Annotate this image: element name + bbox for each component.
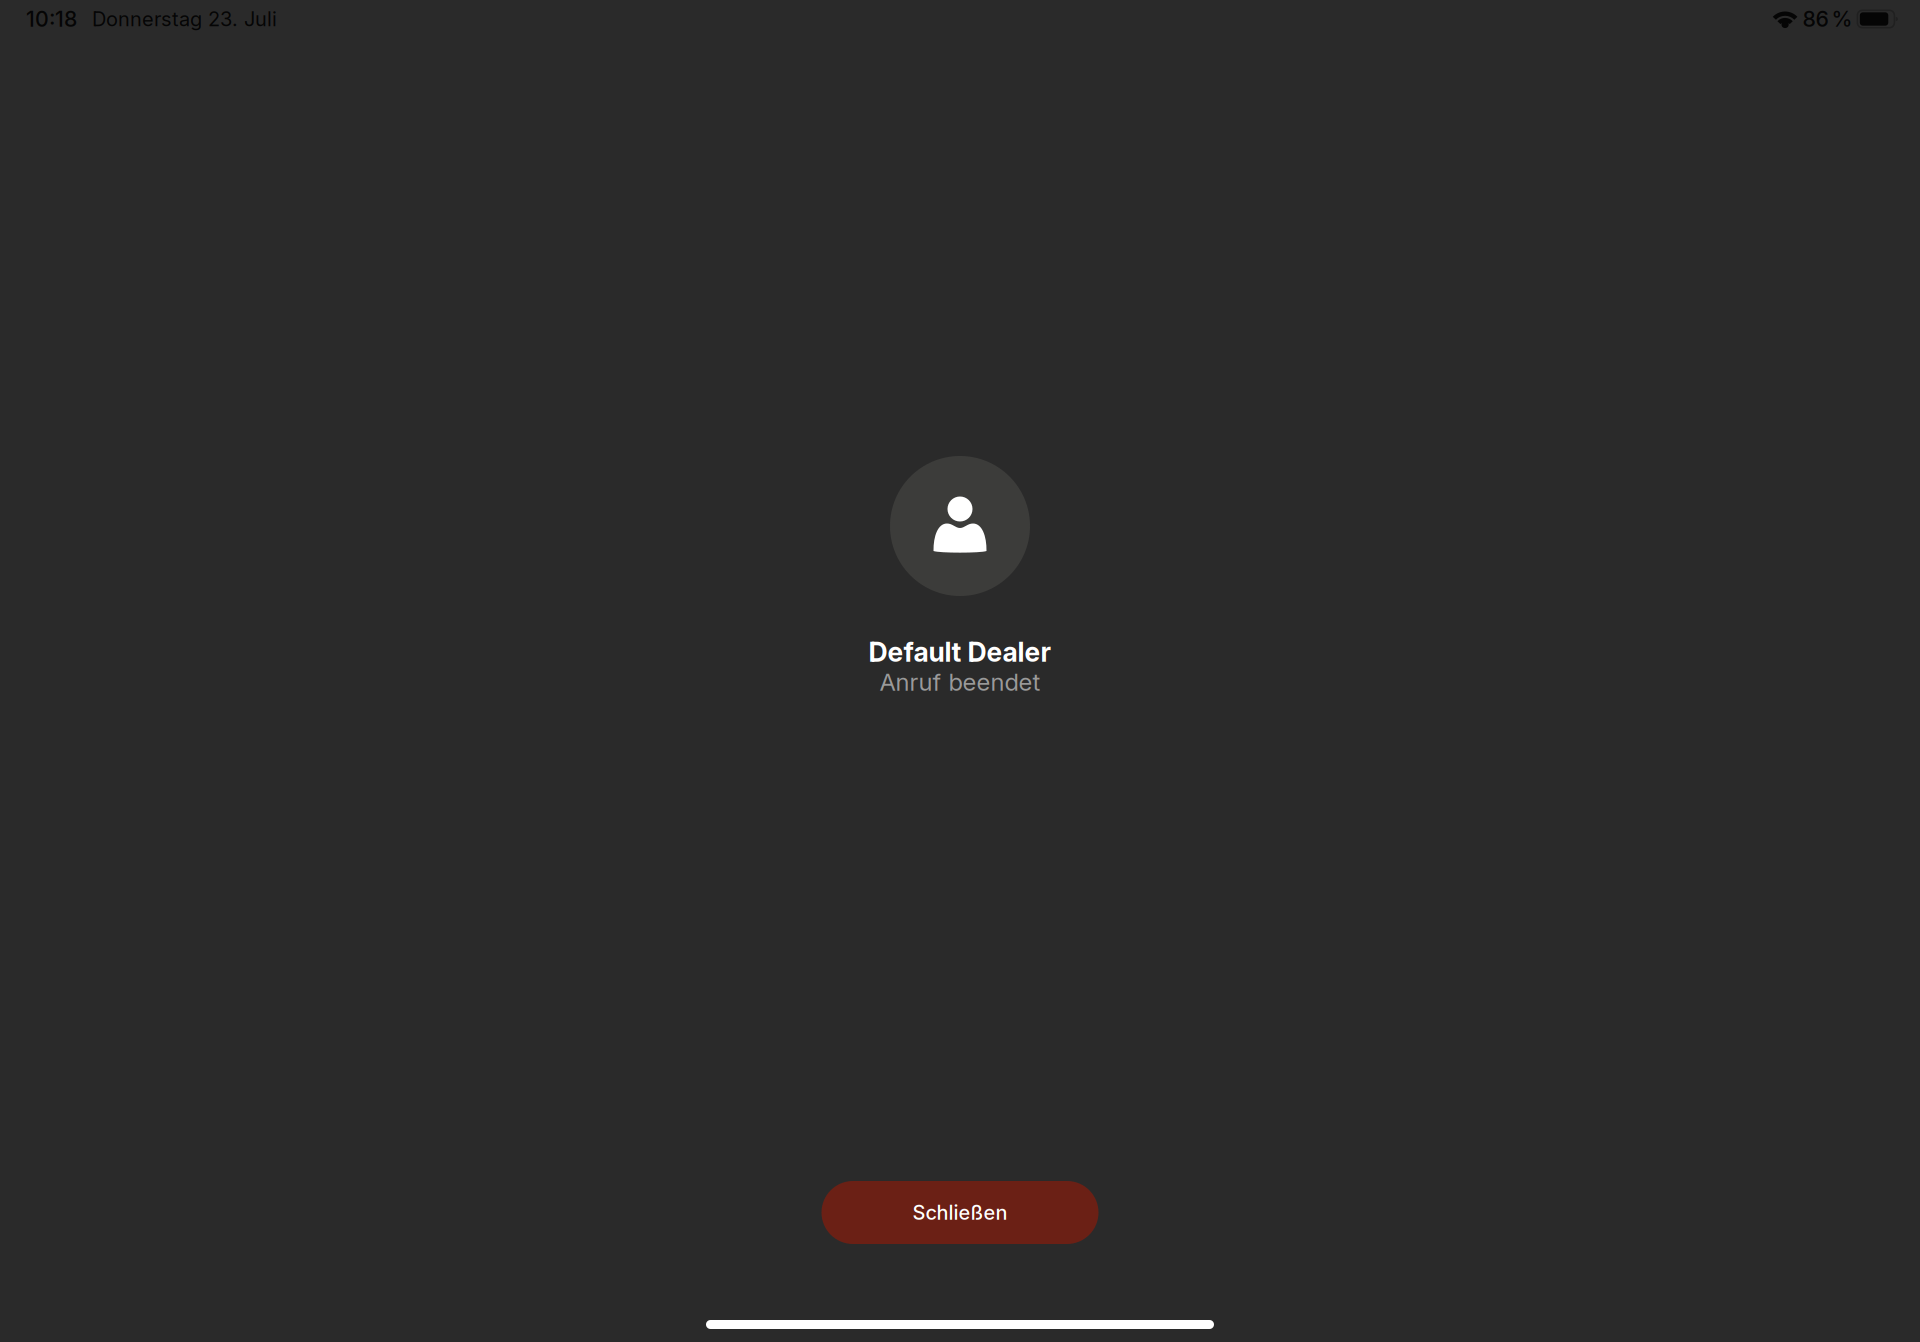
staticText: Default Dealer: [868, 636, 1051, 668]
staticText: Donnerstag 23. Juli: [92, 7, 277, 31]
staticText: Schließen: [912, 1200, 1007, 1225]
staticText: 86: [1802, 6, 1828, 32]
staticText: 10:18: [26, 6, 77, 32]
staticText: Anruf beendet: [879, 667, 1040, 696]
staticText: %: [1831, 6, 1852, 32]
button[interactable]: Schließen: [821, 1181, 1098, 1244]
